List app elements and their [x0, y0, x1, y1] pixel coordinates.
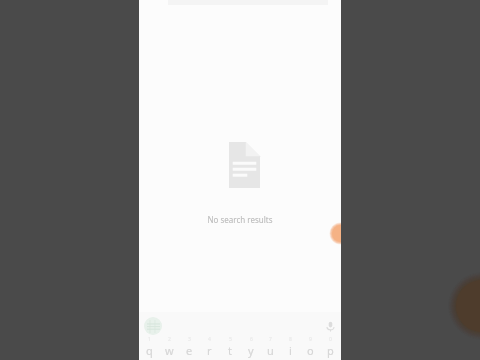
staticText: 2 — [168, 336, 171, 343]
button[interactable]: 7 — [261, 336, 280, 360]
staticText: u — [267, 343, 274, 358]
staticText: 0 — [329, 336, 332, 343]
staticText: i — [289, 343, 292, 358]
staticText: 5 — [229, 336, 232, 343]
staticText: p — [327, 343, 334, 358]
staticText: 6 — [250, 336, 253, 343]
staticText: r — [207, 343, 212, 358]
staticText: 7 — [269, 336, 272, 343]
button[interactable]: 5 — [220, 336, 239, 360]
staticText: 3 — [188, 336, 191, 343]
staticText: t — [228, 343, 232, 358]
staticText: 1 — [148, 336, 151, 343]
button[interactable]: 2 — [160, 336, 179, 360]
staticText: o — [307, 343, 314, 358]
staticText: No search results — [207, 214, 273, 225]
button[interactable]: Compose — [316, 209, 341, 258]
staticText: y — [248, 343, 254, 358]
staticText: 8 — [289, 336, 292, 343]
button[interactable]: 4 — [200, 336, 219, 360]
button[interactable]: Voice input — [324, 320, 336, 332]
staticText: q — [146, 343, 153, 358]
staticText: 9 — [309, 336, 312, 343]
button[interactable]: 1 — [140, 336, 159, 360]
button[interactable]: 8 — [281, 336, 300, 360]
staticText: w — [165, 343, 174, 358]
button[interactable]: 9 — [301, 336, 320, 360]
button[interactable]: Google — [144, 317, 162, 335]
button[interactable]: 6 — [241, 336, 260, 360]
staticText: e — [186, 343, 193, 358]
button[interactable]: 3 — [180, 336, 199, 360]
staticText: 4 — [208, 336, 211, 343]
button[interactable]: 0 — [321, 336, 340, 360]
